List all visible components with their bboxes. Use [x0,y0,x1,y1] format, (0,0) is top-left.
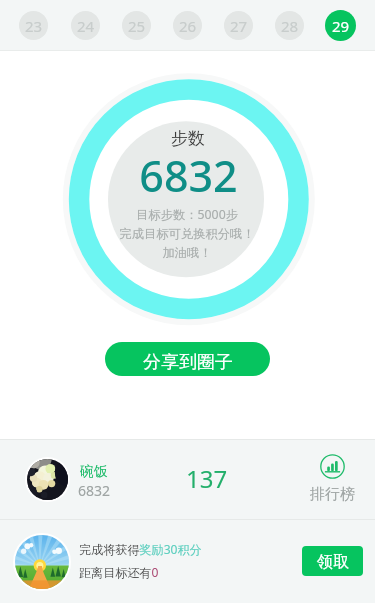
staticText: 137 [186,462,228,495]
staticText: 25 [128,16,146,36]
button[interactable]: 分享到圈子 [105,342,270,376]
button[interactable]: 23 [7,0,59,50]
button[interactable]: 24 [59,0,111,50]
button[interactable]: 排行榜 [306,454,359,504]
button[interactable]: 领取 [302,546,363,576]
button[interactable]: 28 [264,0,315,50]
button[interactable]: 25 [111,0,162,50]
button[interactable]: 完成将获得奖励30积分 [0,519,375,603]
button[interactable]: 26 [162,0,213,50]
staticText: 24 [77,16,95,36]
staticText: 23 [25,16,43,36]
staticText: 6832 [108,146,269,205]
staticText: 6832 [78,481,111,500]
staticText: 碗饭 [80,463,108,481]
staticText: 分享到圈子 [143,351,233,374]
staticText: 领取 [317,552,349,572]
staticText: 完成将获得奖励30积分 [79,541,202,558]
staticText: 排行榜 [310,485,355,504]
staticText: 步数 [108,128,268,149]
staticText: 29 [332,16,350,36]
staticText: 目标步数：5000步 完成目标可兑换积分哦！ 加油哦！ [108,206,266,261]
staticText: 27 [230,16,248,36]
button[interactable]: 27 [213,0,264,50]
button[interactable]: 29 [315,0,366,50]
staticText: 距离目标还有0 [79,564,159,581]
staticText: 28 [281,16,299,36]
button[interactable]: 碗饭 [0,439,375,519]
staticText: 26 [179,16,197,36]
